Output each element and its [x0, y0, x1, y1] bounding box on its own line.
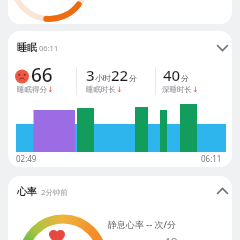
staticText: 深睡时长↓	[162, 85, 199, 94]
staticText: 40	[163, 65, 181, 85]
staticText: 06:11	[201, 153, 222, 164]
staticText: 睡眠得分↓	[17, 85, 54, 94]
staticText: 40	[163, 233, 178, 240]
staticText: 66	[31, 62, 53, 88]
staticText: 02:49	[16, 153, 37, 164]
staticText: 分	[129, 73, 137, 83]
staticText: 心率	[17, 185, 37, 198]
staticText: 分	[181, 73, 189, 83]
staticText: 3	[86, 65, 95, 85]
staticText: 小时	[95, 73, 111, 83]
staticText: 22	[111, 65, 129, 85]
staticText: 2分钟前	[41, 187, 68, 197]
staticText: 睡眠	[17, 41, 37, 54]
staticText: 静息心率 -- 次/分	[108, 218, 176, 230]
staticText: 06:11	[39, 43, 59, 53]
staticText: 睡眠时长↓	[86, 85, 123, 94]
